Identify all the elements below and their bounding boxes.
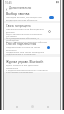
staticText: Связь запрещена — [6, 24, 31, 28]
staticText: Подключение устройств через Bluetooth со… — [6, 46, 48, 55]
staticText: Мелодия вызова, звучащая при входящем вы… — [6, 16, 42, 22]
staticText: При включении этой функции все вызовы бу… — [6, 28, 48, 43]
button[interactable]: Toggle — [49, 16, 54, 19]
button[interactable] — [4, 23, 60, 38]
staticText: Здесь хранятся все действия связанные с … — [6, 64, 48, 73]
staticText: Журнал управл. Bluetooth — [6, 60, 44, 64]
button[interactable]: Home — [29, 103, 36, 110]
button[interactable] — [4, 11, 60, 21]
button[interactable]: Back — [13, 103, 20, 110]
button[interactable] — [4, 57, 60, 72]
staticText: ▮▮ — [56, 1, 59, 4]
staticText: ‹ — [6, 6, 8, 11]
staticText: Дополнительно — [9, 6, 32, 10]
button[interactable]: Option selected — [47, 46, 50, 49]
button[interactable]: Back — [4, 6, 9, 11]
button[interactable] — [4, 40, 60, 54]
button[interactable]: Back — [4, 5, 60, 11]
button[interactable]: Recent apps — [44, 103, 51, 110]
button[interactable]: Option — [48, 30, 51, 33]
staticText: Способ подключения — [6, 42, 37, 46]
staticText: 10:45 — [5, 1, 12, 5]
staticText: Выбор звонка — [6, 11, 30, 16]
